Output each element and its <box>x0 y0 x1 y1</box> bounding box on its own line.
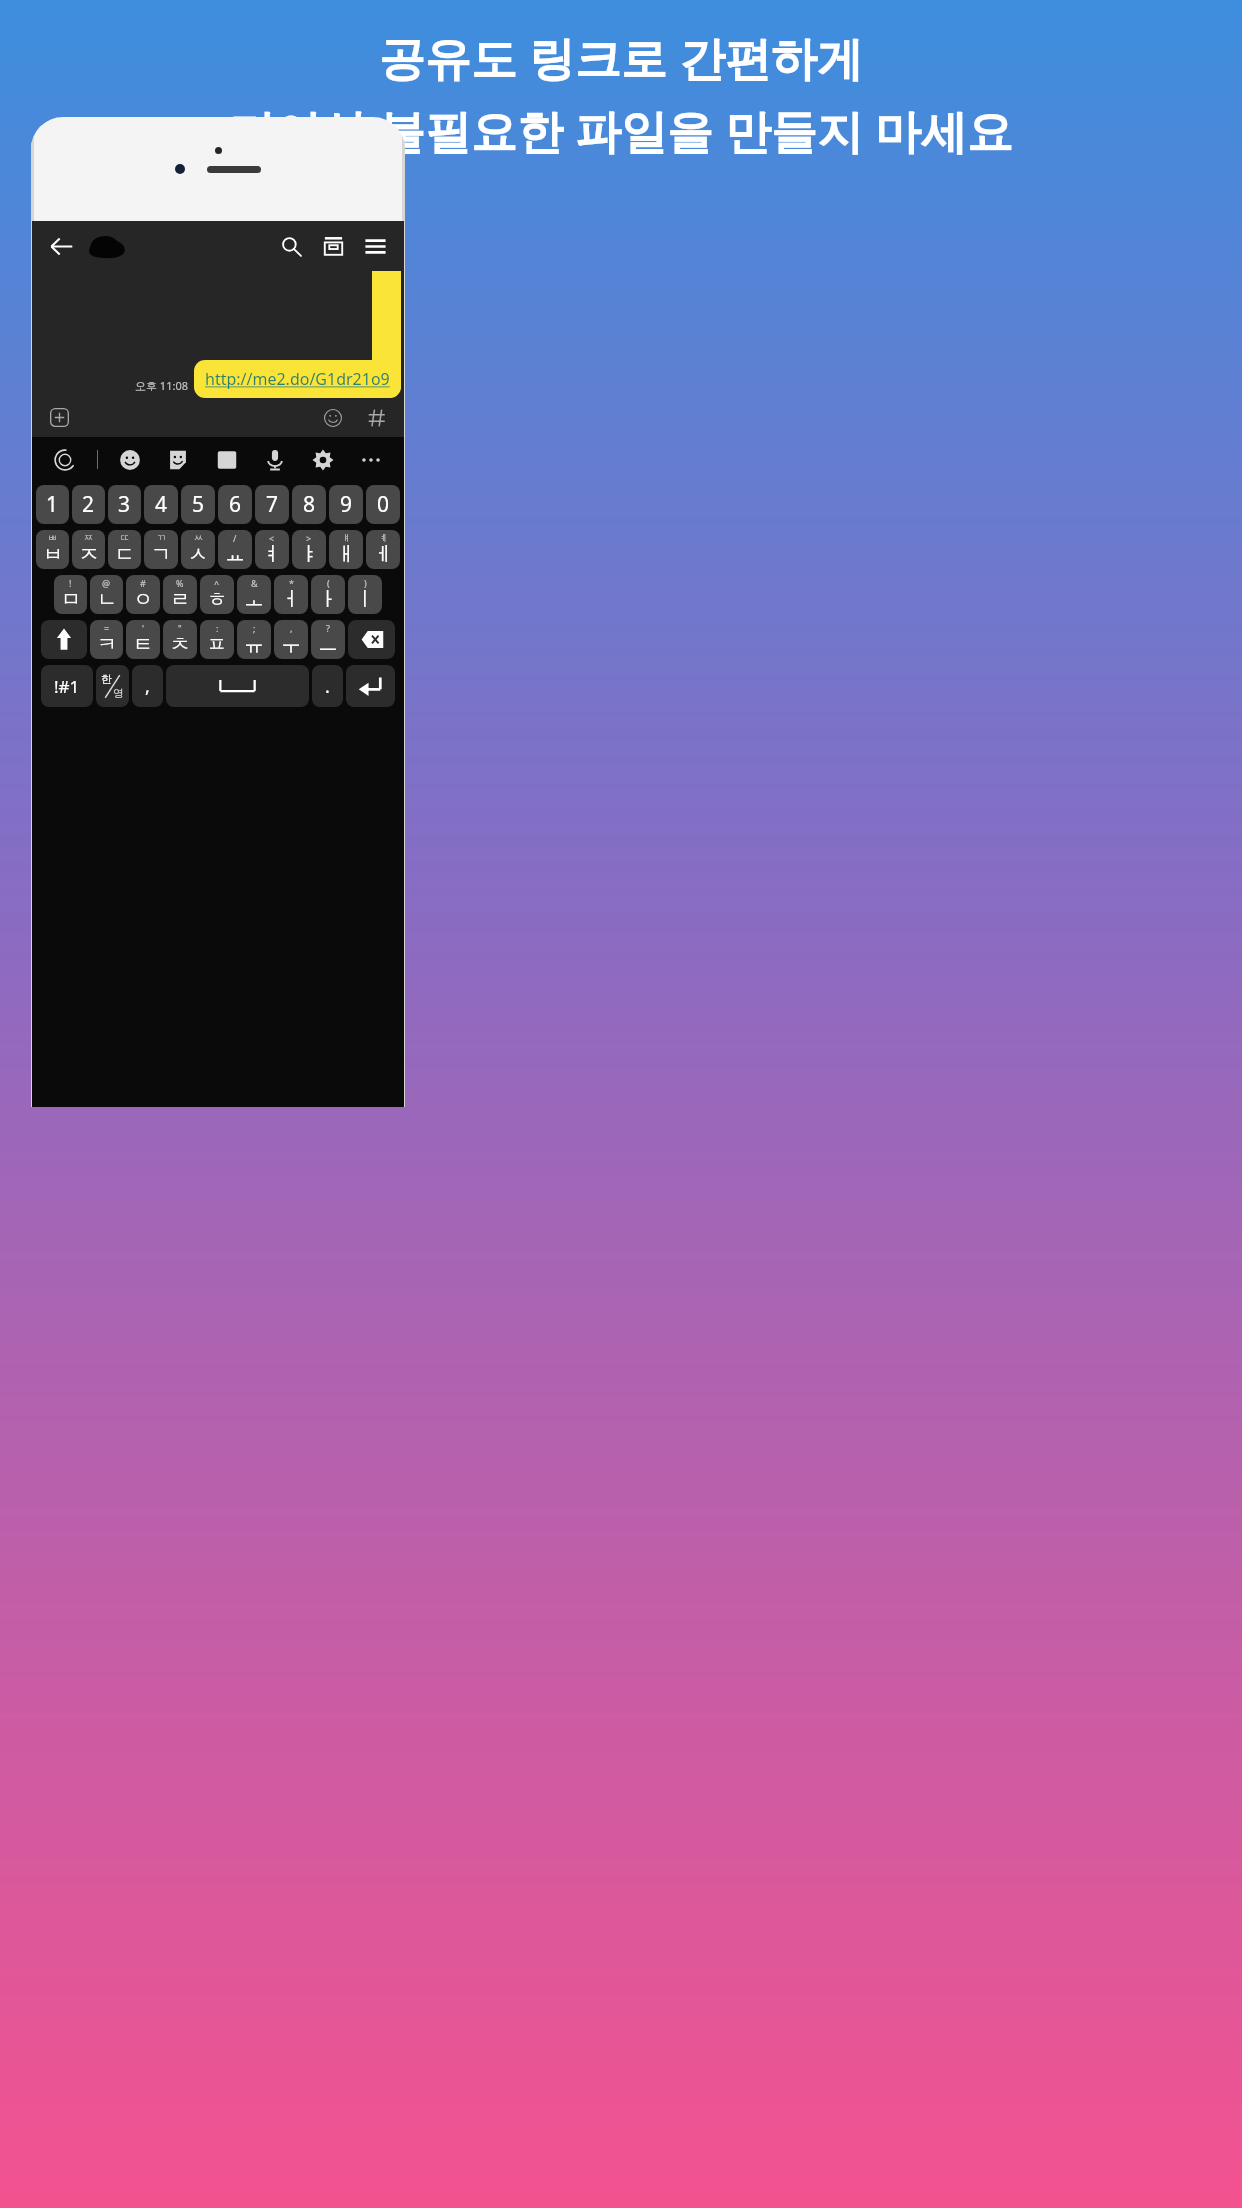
staticText: ; <box>253 622 256 634</box>
staticText: ㅠ <box>244 632 264 657</box>
button[interactable]: , <box>274 620 308 659</box>
staticText: ㅌ <box>133 632 153 657</box>
button[interactable]: Emoji <box>319 404 347 432</box>
staticText: ( <box>327 577 330 589</box>
button[interactable]: ㅃ <box>36 530 69 569</box>
button[interactable]: ㅒ <box>329 530 363 569</box>
button[interactable]: Add attachment <box>45 403 74 432</box>
button[interactable]: GIF <box>211 444 243 476</box>
staticText: ' <box>142 622 145 634</box>
staticText: ㅅ <box>188 542 208 567</box>
button[interactable]: 4 <box>144 485 178 524</box>
staticText: 오후 11:08 <box>135 378 188 393</box>
staticText: ㅕ <box>262 542 282 567</box>
button[interactable]: ㅖ <box>366 530 400 569</box>
staticText: < <box>269 532 275 544</box>
button[interactable]: 2 <box>72 485 105 524</box>
button[interactable]: ^ <box>200 575 234 614</box>
button[interactable]: ㅆ <box>181 530 215 569</box>
button[interactable]: Back <box>45 230 78 263</box>
button[interactable]: Search <box>276 231 307 262</box>
button[interactable]: ! <box>54 575 87 614</box>
button[interactable]: " <box>163 620 197 659</box>
staticText: ㅊ <box>170 632 190 657</box>
staticText: ㅐ <box>336 542 356 567</box>
button[interactable]: , <box>132 665 163 707</box>
button[interactable]: http://me2.do/G1dr21o9 <box>194 360 401 398</box>
button[interactable]: ㄸ <box>108 530 141 569</box>
button[interactable]: Translate <box>49 444 81 476</box>
button[interactable]: !#1 <box>41 665 93 707</box>
button[interactable]: # <box>126 575 160 614</box>
button[interactable]: Hashtag <box>363 404 391 432</box>
button[interactable]: ; <box>237 620 271 659</box>
button[interactable]: 8 <box>292 485 326 524</box>
staticText: 영 <box>113 686 124 700</box>
button[interactable]: Enter <box>346 665 395 707</box>
staticText: ㄷ <box>115 542 135 567</box>
button[interactable]: Backspace <box>348 620 395 659</box>
button[interactable]: . <box>312 665 343 707</box>
button[interactable] <box>372 271 401 398</box>
button[interactable]: @ <box>90 575 123 614</box>
staticText: ㅎ <box>207 587 227 612</box>
staticText: ㄲ <box>157 532 166 543</box>
button[interactable]: Shift <box>41 620 87 659</box>
button[interactable]: More <box>355 444 387 476</box>
button[interactable]: ( <box>311 575 345 614</box>
button[interactable]: Archive <box>318 231 349 262</box>
button[interactable]: Space <box>166 665 309 707</box>
staticText: ㅁ <box>61 587 81 612</box>
button[interactable]: Menu <box>360 231 391 262</box>
button[interactable]: Sticker <box>162 444 194 476</box>
staticText: http://me2.do/G1dr21o9 <box>205 368 390 390</box>
staticText: ㅜ <box>281 632 301 657</box>
button[interactable]: 9 <box>329 485 363 524</box>
button[interactable]: < <box>255 530 289 569</box>
staticText: 공유도 링크로 간편하게 <box>379 26 863 89</box>
staticText: ㅍ <box>207 632 227 657</box>
button[interactable]: Emoji <box>114 444 146 476</box>
staticText: : <box>216 622 219 634</box>
staticText: ㅂ <box>43 542 63 567</box>
button[interactable]: 1 <box>36 485 69 524</box>
staticText: 4 <box>155 490 168 519</box>
staticText: 2 <box>82 490 95 519</box>
button[interactable]: ㅉ <box>72 530 105 569</box>
staticText: > <box>306 532 312 544</box>
staticText: ㅑ <box>299 542 319 567</box>
button[interactable]: 5 <box>181 485 215 524</box>
staticText: = <box>104 622 110 634</box>
staticText: , <box>290 622 293 634</box>
staticText: ㄱ <box>151 542 171 567</box>
staticText: . <box>325 674 330 699</box>
staticText: 7 <box>266 490 279 519</box>
button[interactable]: ㄲ <box>144 530 178 569</box>
staticText: ㅗ <box>244 587 264 612</box>
button[interactable]: ' <box>126 620 160 659</box>
button[interactable]: 7 <box>255 485 289 524</box>
staticText: 3 <box>118 490 131 519</box>
button[interactable]: > <box>292 530 326 569</box>
staticText: ㅋ <box>97 632 117 657</box>
button[interactable]: : <box>200 620 234 659</box>
button[interactable]: ) <box>348 575 382 614</box>
staticText: !#1 <box>54 675 80 698</box>
staticText: / <box>233 532 237 544</box>
staticText: 8 <box>303 490 316 519</box>
staticText: ? <box>326 622 330 634</box>
button[interactable]: Language <box>96 665 129 707</box>
button[interactable]: 0 <box>366 485 400 524</box>
button[interactable]: 6 <box>218 485 252 524</box>
staticText: ㅓ <box>281 587 301 612</box>
button[interactable]: 3 <box>108 485 141 524</box>
button[interactable]: & <box>237 575 271 614</box>
button[interactable]: = <box>90 620 123 659</box>
staticText: & <box>251 577 258 589</box>
button[interactable]: / <box>218 530 252 569</box>
button[interactable]: Voice input <box>259 444 291 476</box>
button[interactable]: Settings <box>307 444 339 476</box>
button[interactable]: % <box>163 575 197 614</box>
button[interactable]: ? <box>311 620 345 659</box>
button[interactable]: * <box>274 575 308 614</box>
